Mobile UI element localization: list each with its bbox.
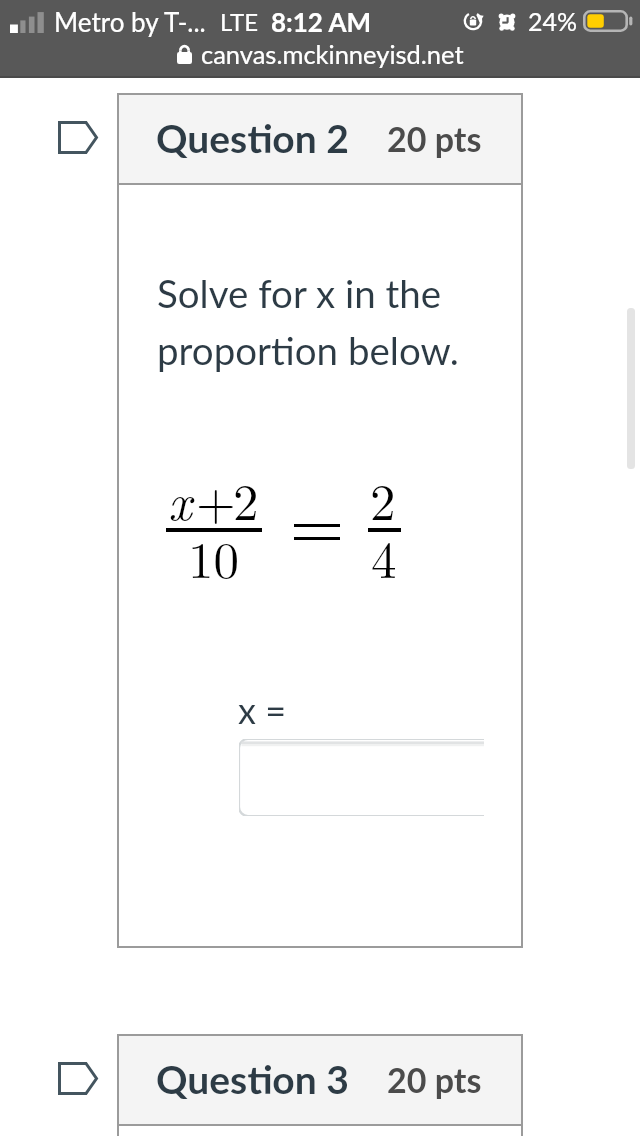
staticText: 20 pts [387, 1059, 482, 1100]
staticText: canvas.mckinneyisd.net [201, 39, 464, 70]
other: Alarm [496, 10, 518, 32]
staticText: proportion below. [157, 327, 459, 373]
other: Rotation lock [462, 10, 484, 32]
staticText: Solve for x in the [157, 270, 442, 316]
staticText: Question 2 [156, 115, 349, 162]
staticText: Question 3 [156, 1056, 349, 1103]
other: Secure [177, 45, 192, 64]
button[interactable]: Flag question [58, 121, 98, 154]
staticText: 10 [188, 521, 240, 593]
button[interactable]: Flag question [58, 1062, 98, 1095]
staticText: 2 [233, 463, 259, 535]
staticText: 4 [371, 521, 397, 593]
staticText: Metro by T-... [54, 6, 206, 37]
staticText: 20 pts [387, 118, 482, 159]
staticText: 8:12 AM [271, 6, 372, 37]
staticText: x [168, 463, 192, 535]
other: Battery 24% [583, 10, 633, 32]
staticText: 2 [370, 463, 396, 535]
button[interactable]: Question 3 [117, 1034, 523, 1124]
staticText: LTE [220, 7, 259, 36]
staticText: 24% [528, 6, 578, 36]
staticText: x = [238, 688, 287, 731]
button[interactable] [239, 739, 484, 816]
staticText: + [196, 463, 236, 535]
button[interactable]: Question 2 [117, 93, 523, 183]
